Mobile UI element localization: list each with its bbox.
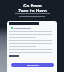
button[interactable]: Get started [11,63,54,67]
staticText: Zero to Hero [18,8,47,12]
staticText: Get started [27,64,39,67]
staticText: Go from [23,3,42,7]
